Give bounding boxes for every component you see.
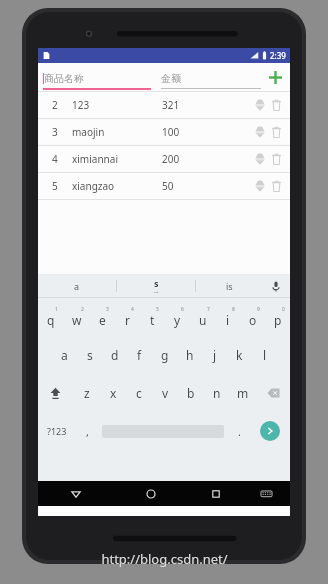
- staticText: r: [125, 312, 130, 328]
- button[interactable]: Delete: [268, 94, 285, 116]
- staticText: f: [137, 347, 142, 363]
- staticText: 2: [52, 98, 58, 112]
- button[interactable]: Backspace: [256, 374, 290, 412]
- staticText: 1: [55, 306, 58, 313]
- staticText: w: [72, 312, 82, 328]
- staticText: 5: [52, 179, 58, 193]
- staticText: 4: [131, 306, 134, 313]
- staticText: s: [87, 347, 93, 363]
- button[interactable]: Recent apps: [188, 481, 243, 506]
- button[interactable]: Voice input: [262, 274, 290, 298]
- button[interactable]: h: [177, 336, 202, 374]
- button[interactable]: c: [126, 374, 152, 412]
- staticText: a: [74, 280, 80, 292]
- staticText: 100: [162, 125, 180, 139]
- button[interactable]: 1: [38, 298, 64, 336]
- staticText: q: [47, 312, 55, 328]
- staticText: 3: [106, 306, 109, 313]
- button[interactable]: 5: [140, 298, 165, 336]
- staticText: v: [162, 385, 169, 401]
- button[interactable]: 4: [115, 298, 140, 336]
- button[interactable]: 8: [215, 298, 240, 336]
- staticText: xiangzao: [72, 179, 115, 193]
- button[interactable]: g: [152, 336, 177, 374]
- button[interactable]: 2: [38, 91, 290, 118]
- button[interactable]: .: [228, 412, 250, 450]
- button[interactable]: is: [196, 274, 262, 298]
- staticText: z: [84, 385, 90, 401]
- button[interactable]: Reorder: [251, 175, 268, 197]
- staticText: ,: [86, 424, 89, 439]
- button[interactable]: 3: [38, 118, 290, 145]
- button[interactable]: Reorder: [251, 94, 268, 116]
- staticText: 3: [52, 125, 58, 139]
- button[interactable]: Delete: [268, 175, 285, 197]
- button[interactable]: z: [73, 374, 100, 412]
- button[interactable]: 2: [64, 298, 90, 336]
- staticText: m: [237, 385, 249, 401]
- staticText: 123: [72, 98, 90, 112]
- button[interactable]: 商品名称: [43, 63, 151, 91]
- staticText: h: [186, 347, 194, 363]
- button[interactable]: a: [52, 336, 77, 374]
- button[interactable]: Enter: [250, 412, 290, 450]
- staticText: a: [61, 347, 68, 363]
- staticText: c: [136, 385, 142, 401]
- button[interactable]: 4: [38, 145, 290, 172]
- staticText: 9: [257, 306, 260, 313]
- button[interactable]: 9: [240, 298, 265, 336]
- staticText: i: [226, 312, 230, 328]
- staticText: l: [263, 347, 267, 363]
- button[interactable]: 7: [190, 298, 215, 336]
- staticText: k: [236, 347, 243, 363]
- button[interactable]: x: [100, 374, 126, 412]
- button[interactable]: j: [202, 336, 227, 374]
- staticText: .: [238, 424, 241, 439]
- staticText: d: [111, 347, 119, 363]
- staticText: 0: [282, 306, 285, 313]
- staticText: 7: [207, 306, 210, 313]
- button[interactable]: Delete: [268, 121, 285, 143]
- button[interactable]: s: [77, 336, 102, 374]
- staticText: p: [274, 312, 282, 328]
- button[interactable]: 金额: [161, 63, 261, 91]
- staticText: 2: [81, 306, 84, 313]
- button[interactable]: a: [38, 274, 116, 298]
- button[interactable]: l: [252, 336, 277, 374]
- staticText: t: [150, 312, 155, 328]
- button[interactable]: 0: [265, 298, 290, 336]
- button[interactable]: n: [204, 374, 230, 412]
- staticText: 8: [232, 306, 235, 313]
- button[interactable]: ,: [76, 412, 98, 450]
- button[interactable]: Space: [98, 412, 228, 450]
- button[interactable]: Reorder: [251, 148, 268, 170]
- button[interactable]: Delete: [268, 148, 285, 170]
- button[interactable]: v: [152, 374, 178, 412]
- staticText: 金额: [161, 72, 181, 85]
- staticText: ?123: [47, 425, 67, 437]
- button[interactable]: Hide keyboard: [243, 481, 290, 506]
- button[interactable]: 3: [90, 298, 115, 336]
- button[interactable]: Reorder: [251, 121, 268, 143]
- staticText: 5: [156, 306, 159, 313]
- button[interactable]: s: [117, 274, 195, 298]
- button[interactable]: ?123: [38, 412, 76, 450]
- button[interactable]: f: [127, 336, 152, 374]
- button[interactable]: Shift: [38, 374, 73, 412]
- staticText: u: [199, 312, 207, 328]
- button[interactable]: d: [102, 336, 127, 374]
- button[interactable]: 5: [38, 172, 290, 199]
- button[interactable]: m: [230, 374, 256, 412]
- staticText: g: [161, 347, 169, 363]
- button[interactable]: 6: [165, 298, 190, 336]
- staticText: •••: [154, 290, 159, 295]
- staticText: e: [99, 312, 106, 328]
- button[interactable]: Back: [38, 481, 113, 506]
- staticText: is: [226, 280, 233, 292]
- staticText: 50: [162, 179, 174, 193]
- button[interactable]: Add item: [265, 67, 285, 87]
- button[interactable]: Home: [113, 481, 188, 506]
- staticText: 4: [52, 152, 58, 166]
- button[interactable]: k: [227, 336, 252, 374]
- button[interactable]: b: [178, 374, 204, 412]
